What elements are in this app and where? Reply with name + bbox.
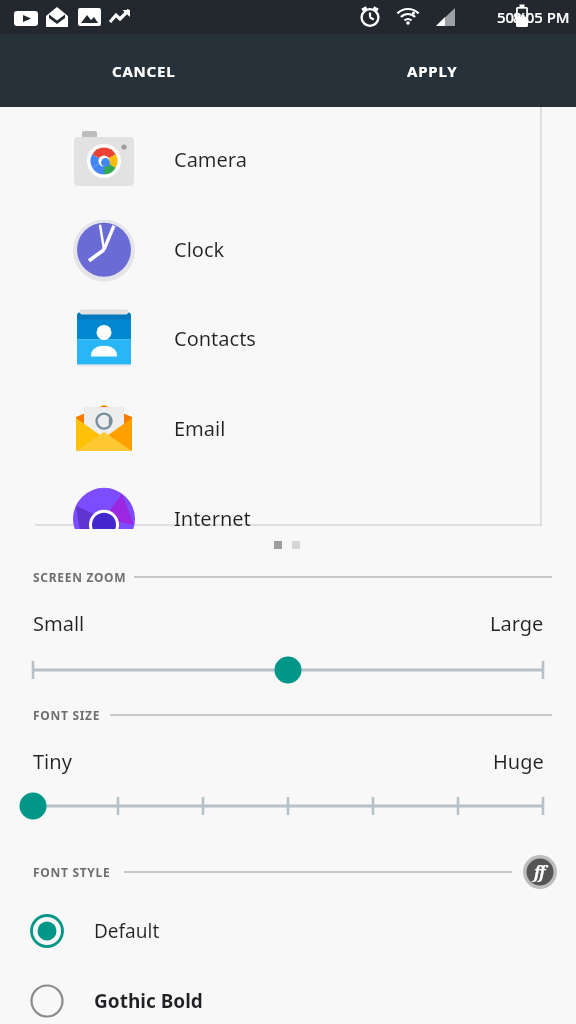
staticText: Gothic Bold: [94, 988, 203, 1014]
staticText: FONT STYLE: [33, 864, 111, 880]
button[interactable]: Internet: [0, 474, 576, 529]
staticText: Small: [33, 610, 85, 637]
staticText: FONT SIZE: [33, 707, 101, 723]
button[interactable]: Email: [0, 384, 576, 473]
button[interactable]: Download fonts: [522, 855, 558, 889]
button[interactable]: Default: [0, 907, 576, 955]
staticText: Contacts: [174, 325, 256, 352]
button[interactable]: Clock: [0, 205, 576, 294]
staticText: Email: [174, 415, 226, 442]
staticText: CANCEL: [112, 61, 176, 81]
staticText: Large: [490, 610, 544, 637]
staticText: Internet: [174, 505, 251, 529]
button[interactable]: APPLY: [288, 34, 576, 107]
button[interactable]: Screen zoom slider: [0, 653, 576, 687]
button[interactable]: CANCEL: [0, 34, 288, 107]
staticText: ff: [534, 861, 546, 883]
button[interactable]: Contacts: [0, 294, 576, 383]
staticText: 50%: [497, 7, 527, 27]
button[interactable]: Camera: [0, 115, 576, 204]
staticText: Clock: [174, 236, 225, 263]
staticText: Huge: [493, 748, 544, 775]
staticText: Camera: [174, 146, 247, 173]
staticText: SCREEN ZOOM: [33, 569, 127, 585]
staticText: Tiny: [33, 748, 72, 775]
staticText: APPLY: [407, 61, 458, 81]
staticText: Default: [94, 918, 160, 944]
button[interactable]: Gothic Bold: [0, 977, 576, 1024]
button[interactable]: Font size slider: [0, 789, 576, 823]
staticText: 8:05 PM: [513, 7, 570, 27]
